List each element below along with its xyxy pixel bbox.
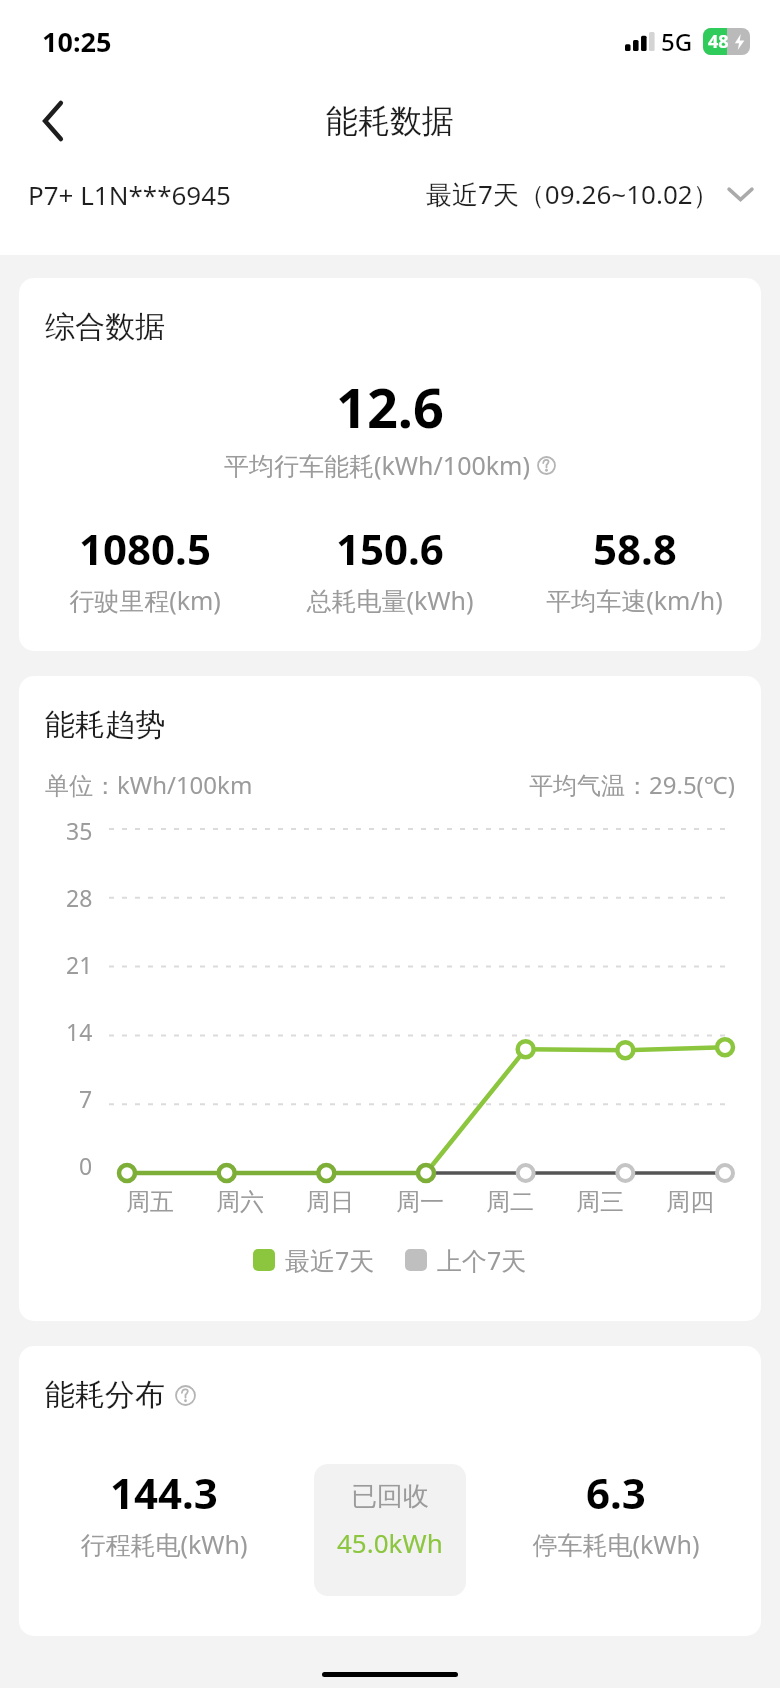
button[interactable]: 能耗趋势 bbox=[19, 676, 761, 1321]
button[interactable]: Back bbox=[22, 90, 84, 152]
staticText: 150.6 bbox=[336, 520, 444, 577]
staticText: 0 bbox=[79, 1150, 93, 1181]
staticText: 58.8 bbox=[593, 520, 677, 577]
staticText: 周一 bbox=[396, 1187, 444, 1217]
button[interactable]: 最近7天 bbox=[253, 1243, 375, 1277]
staticText: 21 bbox=[66, 949, 93, 980]
staticText: 单位：kWh/100km bbox=[45, 768, 253, 801]
staticText: 行程耗电(kWh) bbox=[80, 1527, 248, 1561]
staticText: 平均车速(km/h) bbox=[546, 583, 723, 617]
staticText: 45.0kWh bbox=[337, 1525, 443, 1560]
staticText: 1080.5 bbox=[79, 520, 211, 577]
staticText: 周日 bbox=[306, 1187, 354, 1217]
staticText: 48 bbox=[708, 29, 729, 54]
staticText: 周六 bbox=[216, 1187, 264, 1217]
staticText: 能耗数据 bbox=[326, 101, 454, 141]
staticText: 周三 bbox=[576, 1187, 624, 1217]
staticText: 平均行车能耗(kWh/100km) bbox=[224, 448, 530, 482]
staticText: 总耗电量(kWh) bbox=[306, 583, 474, 617]
staticText: 行驶里程(km) bbox=[69, 583, 221, 617]
staticText: 12.6 bbox=[336, 370, 444, 444]
staticText: 上个7天 bbox=[437, 1243, 527, 1277]
staticText: 35 bbox=[66, 815, 93, 846]
staticText: 最近7天（09.26~10.02） bbox=[426, 176, 719, 212]
button[interactable]: 能耗分布 bbox=[19, 1346, 761, 1636]
staticText: 周四 bbox=[666, 1187, 714, 1217]
staticText: 最近7天 bbox=[285, 1243, 375, 1277]
button[interactable]: 最近7天（09.26~10.02） bbox=[426, 176, 752, 212]
staticText: 已回收 bbox=[351, 1480, 429, 1513]
staticText: 6.3 bbox=[586, 1464, 646, 1521]
staticText: 平均气温：29.5(℃) bbox=[529, 768, 735, 801]
staticText: 综合数据 bbox=[45, 308, 165, 346]
staticText: 能耗分布 bbox=[45, 1376, 165, 1414]
staticText: 10:25 bbox=[42, 23, 112, 60]
button[interactable]: 综合数据 bbox=[19, 278, 761, 651]
staticText: 停车耗电(kWh) bbox=[532, 1527, 700, 1561]
staticText: 能耗趋势 bbox=[45, 706, 165, 744]
staticText: 5G bbox=[661, 25, 693, 58]
staticText: 周二 bbox=[486, 1187, 534, 1217]
staticText: P7+ L1N***6945 bbox=[28, 177, 231, 212]
staticText: 28 bbox=[66, 882, 93, 913]
staticText: 7 bbox=[79, 1083, 93, 1114]
button[interactable]: 上个7天 bbox=[405, 1243, 527, 1277]
staticText: 14 bbox=[66, 1016, 93, 1047]
staticText: 144.3 bbox=[110, 1464, 218, 1521]
staticText: 周五 bbox=[126, 1187, 174, 1217]
